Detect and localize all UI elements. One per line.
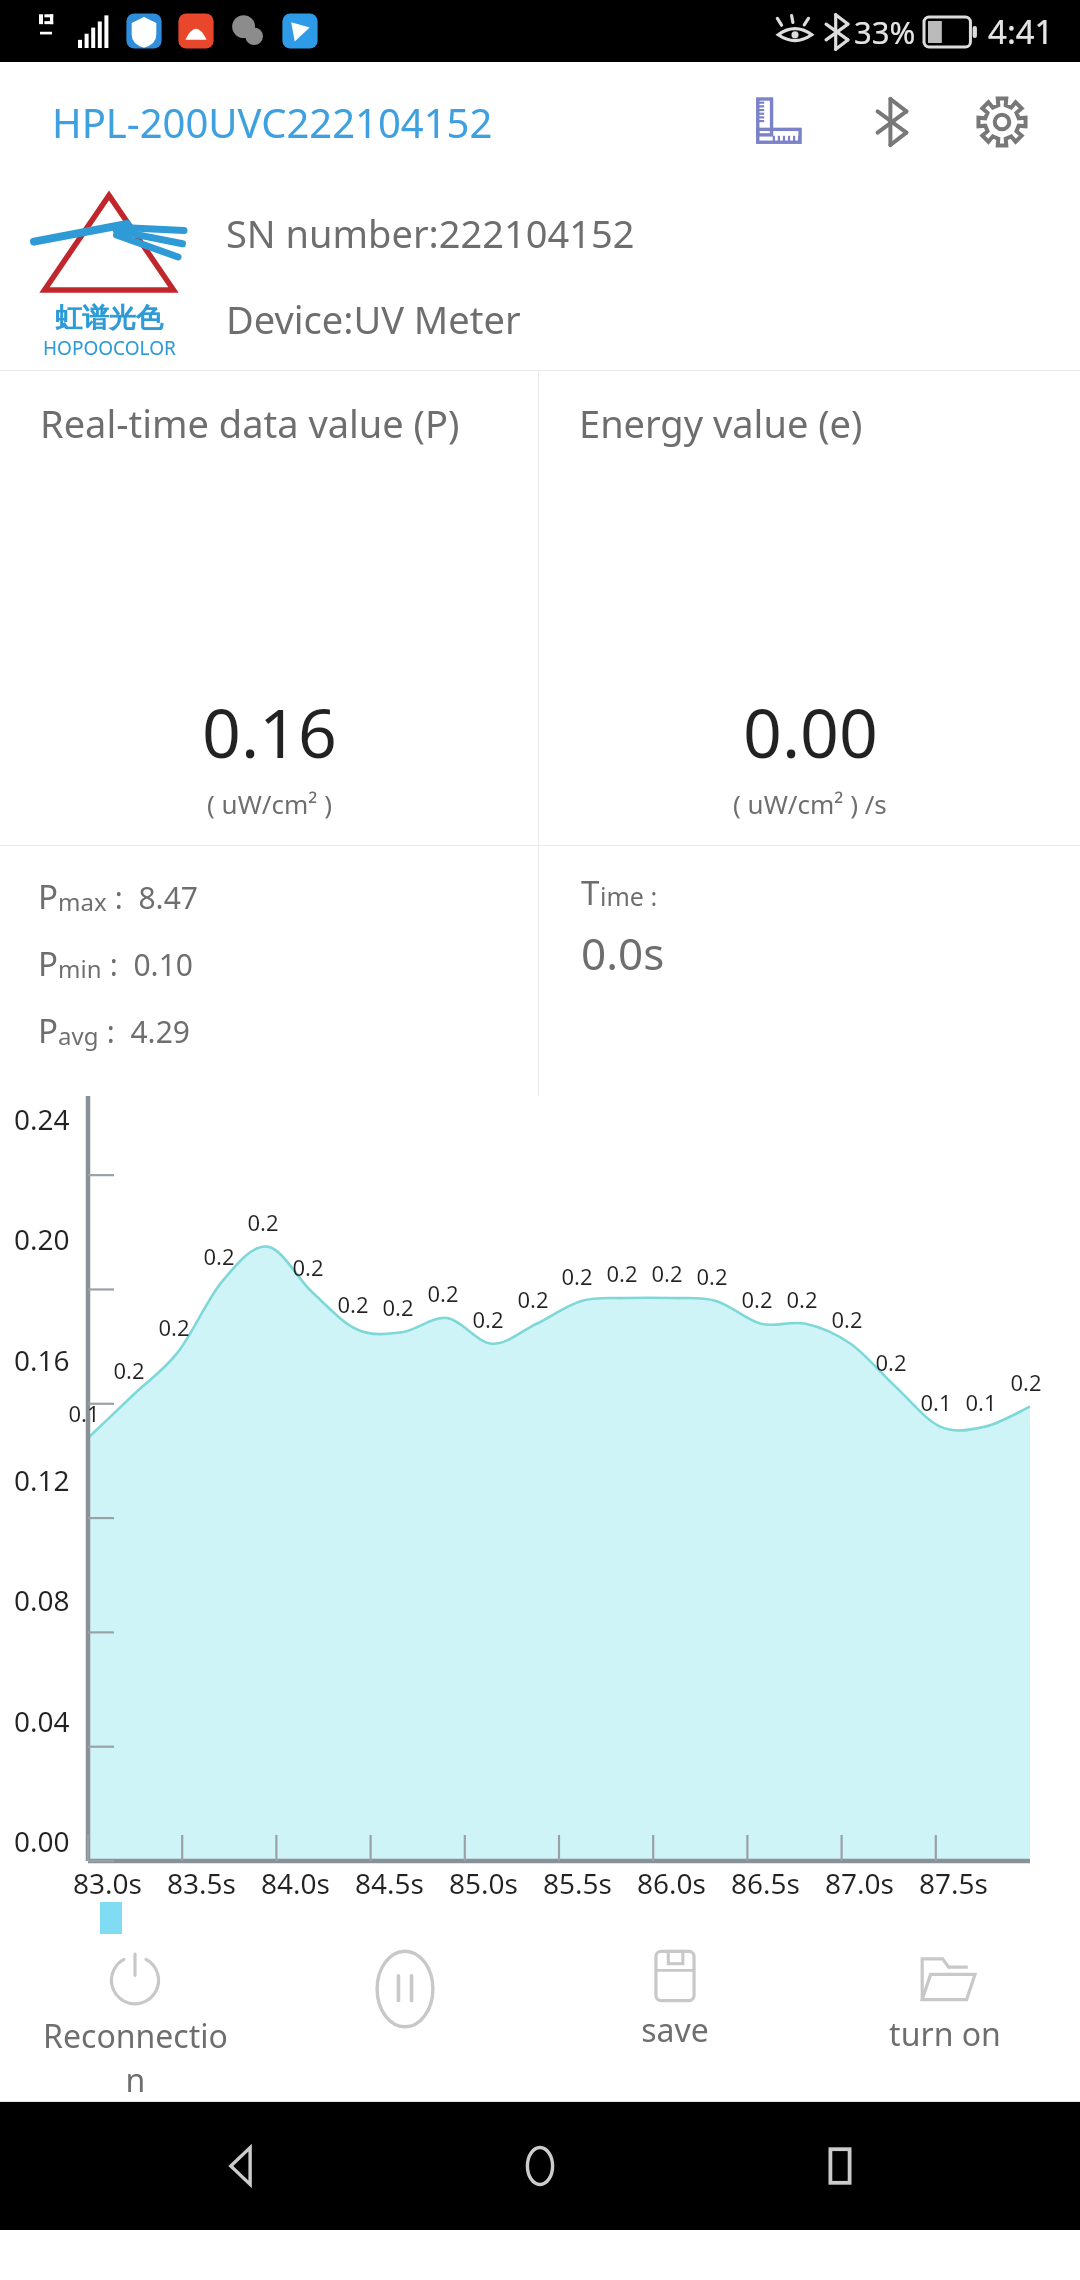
staticText: 0.2 xyxy=(113,1355,145,1385)
staticText: Energy value (e) xyxy=(579,397,863,449)
staticText: : 0.10 xyxy=(102,944,193,985)
staticText: P xyxy=(38,1008,58,1053)
staticText: T xyxy=(581,870,600,915)
staticText: 0.00 xyxy=(14,1822,70,1860)
staticText: 0.2 xyxy=(1010,1367,1042,1397)
staticText: 85.0s xyxy=(449,1864,518,1902)
staticText: 84.5s xyxy=(355,1864,424,1902)
staticText: : 4.29 xyxy=(99,1011,190,1052)
staticText: 87.5s xyxy=(919,1864,988,1902)
staticText: 0.2 xyxy=(472,1304,504,1334)
staticText: min xyxy=(58,952,102,985)
staticText: 0.08 xyxy=(14,1581,70,1619)
staticText: 0.1 xyxy=(920,1387,952,1417)
staticText: 85.5s xyxy=(543,1864,612,1902)
staticText: 虹谱光色 xyxy=(55,301,163,335)
button[interactable]: Recent apps xyxy=(780,2106,900,2226)
staticText: 0.2 xyxy=(203,1241,235,1271)
button[interactable]: Pause xyxy=(270,1934,540,2102)
button[interactable]: Reconnectio n xyxy=(0,1934,270,2102)
staticText: 0.20 xyxy=(14,1220,70,1258)
staticText: 0.04 xyxy=(14,1702,70,1740)
staticText: 0.1 xyxy=(965,1387,997,1417)
button[interactable]: Measure xyxy=(736,80,820,164)
staticText: ( uW/cm² ) /s xyxy=(733,786,887,821)
staticText: 0.2 xyxy=(606,1258,638,1288)
button[interactable]: Home xyxy=(480,2106,600,2226)
staticText: max xyxy=(58,885,107,918)
staticText: 0.2 xyxy=(337,1289,369,1319)
staticText: 0.2 xyxy=(247,1207,279,1237)
staticText: 0.2 xyxy=(292,1252,324,1282)
staticText: 0.2 xyxy=(382,1292,414,1322)
staticText: Real-time data value (P) xyxy=(40,397,460,449)
staticText: 0.2 xyxy=(786,1284,818,1314)
staticText: P xyxy=(38,941,58,986)
staticText: 0.0s xyxy=(581,923,665,983)
staticText: 86.5s xyxy=(731,1864,800,1902)
staticText: 0.2 xyxy=(696,1261,728,1291)
staticText: ( uW/cm² ) xyxy=(207,786,332,821)
button[interactable]: HPL-200UVC222104152 xyxy=(52,95,493,149)
staticText: 0.16 xyxy=(202,685,337,778)
staticText: 0.2 xyxy=(741,1284,773,1314)
staticText: SN number:222104152 xyxy=(226,207,635,259)
staticText: 0.24 xyxy=(14,1100,70,1138)
staticText: 0.12 xyxy=(14,1461,70,1499)
button[interactable]: Settings xyxy=(960,80,1044,164)
staticText: 83.0s xyxy=(73,1864,142,1902)
staticText: 33% xyxy=(854,11,916,53)
staticText: 0.2 xyxy=(427,1278,459,1308)
staticText: avg xyxy=(58,1019,99,1052)
staticText: : 8.47 xyxy=(107,877,198,918)
staticText: P xyxy=(38,874,58,919)
staticText: 0.16 xyxy=(14,1341,70,1379)
staticText: Reconnectio n xyxy=(43,2014,228,2102)
staticText: 0.1 xyxy=(68,1398,100,1428)
button[interactable]: turn on xyxy=(810,1934,1080,2102)
staticText: 0.2 xyxy=(561,1261,593,1291)
staticText: Device:UV Meter xyxy=(226,293,521,345)
staticText: 0.00 xyxy=(743,685,878,778)
staticText: 83.5s xyxy=(167,1864,236,1902)
staticText: 0.2 xyxy=(651,1258,683,1288)
staticText: save xyxy=(641,2008,709,2052)
staticText: 4:41 xyxy=(988,9,1054,54)
button[interactable]: Bluetooth xyxy=(850,80,934,164)
staticText: 0.2 xyxy=(158,1312,190,1342)
staticText: 0.2 xyxy=(517,1284,549,1314)
button[interactable]: save xyxy=(540,1934,810,2102)
staticText: 84.0s xyxy=(261,1864,330,1902)
staticText: 87.0s xyxy=(825,1864,894,1902)
staticText: 86.0s xyxy=(637,1864,706,1902)
staticText: 0.2 xyxy=(875,1347,907,1377)
staticText: HOPOOCOLOR xyxy=(43,335,176,361)
staticText: ime : xyxy=(600,879,658,913)
button[interactable]: Back xyxy=(180,2106,300,2226)
staticText: 0.2 xyxy=(831,1304,863,1334)
staticText: turn on xyxy=(889,2012,1001,2056)
